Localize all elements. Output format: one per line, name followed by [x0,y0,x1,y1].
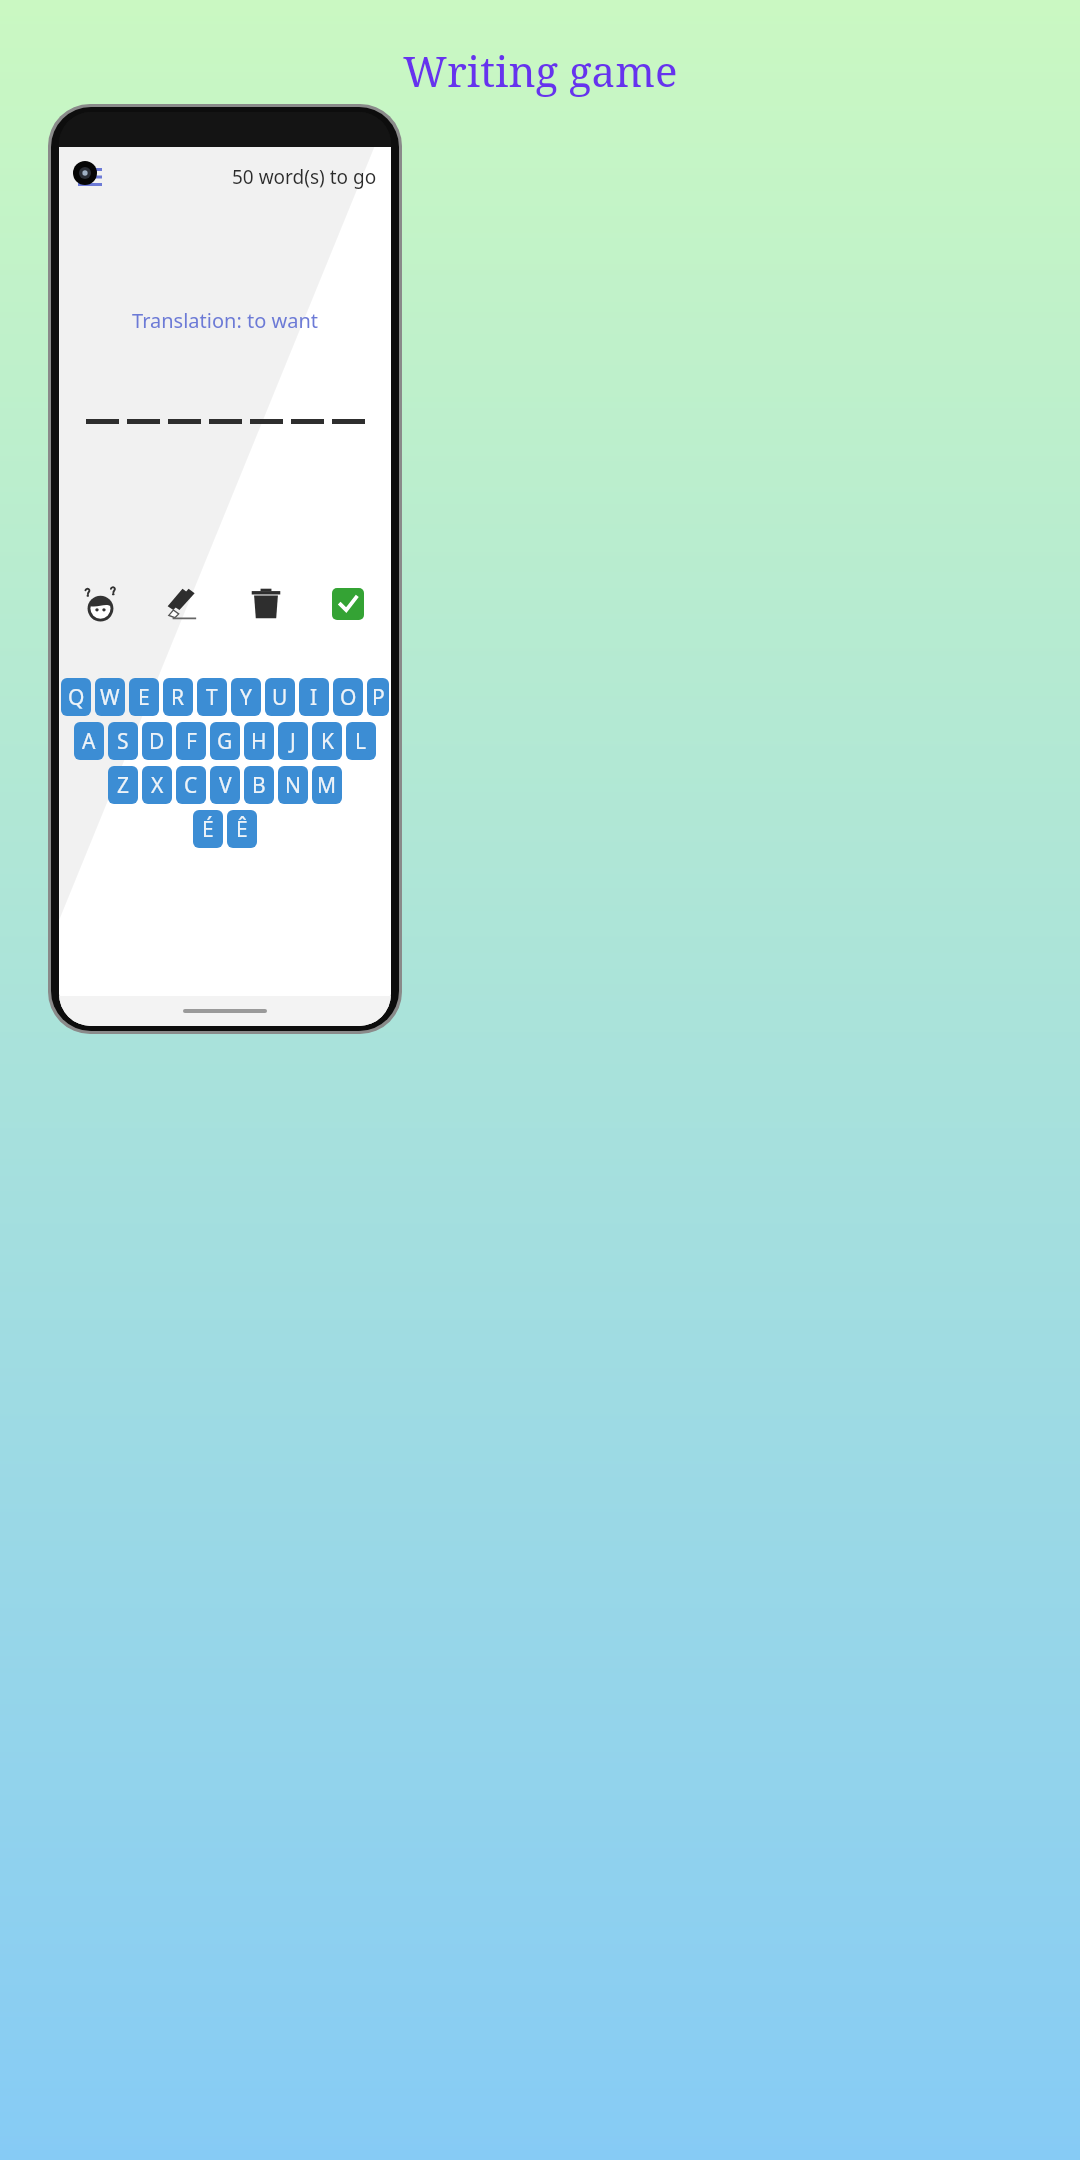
staticText: Q [68,683,85,712]
staticText: N [285,771,301,800]
button[interactable]: T [197,678,227,716]
button[interactable]: S [108,722,138,760]
staticText: C [184,771,198,800]
staticText: O [340,683,357,712]
button[interactable]: Ê [227,810,257,848]
button[interactable]: Confirm [323,579,373,629]
button[interactable]: J [278,722,308,760]
staticText: Ê [236,815,248,844]
staticText: Y [240,683,252,712]
button[interactable]: E [129,678,159,716]
staticText: D [149,727,165,756]
button[interactable]: K [312,722,342,760]
button[interactable]: R [163,678,193,716]
staticText: Translation: to want [132,307,318,334]
staticText: F [186,727,197,756]
button[interactable]: N [278,766,308,804]
button[interactable]: B [244,766,274,804]
button[interactable]: Erase [159,579,209,629]
staticText: E [138,683,150,712]
button[interactable]: Delete [241,579,291,629]
button[interactable]: X [142,766,172,804]
button[interactable]: C [176,766,206,804]
button[interactable]: F [176,722,206,760]
staticText: Z [117,771,130,800]
button[interactable]: O [333,678,363,716]
staticText: J [290,727,296,756]
staticText: A [82,727,96,756]
staticText: K [321,727,334,756]
staticText: B [252,771,266,800]
button[interactable]: D [142,722,172,760]
staticText: W [100,683,120,712]
staticText: H [251,727,267,756]
staticText: S [117,727,129,756]
button[interactable]: M [312,766,342,804]
staticText: É [202,815,214,844]
staticText: L [355,727,367,756]
staticText: G [217,727,233,756]
button[interactable]: Z [108,766,138,804]
staticText: Writing game [403,42,678,99]
button[interactable]: V [210,766,240,804]
button[interactable]: A [74,722,104,760]
button[interactable]: H [244,722,274,760]
button[interactable]: I [299,678,329,716]
staticText: U [272,683,288,712]
button[interactable]: U [265,678,295,716]
staticText: X [151,771,164,800]
button[interactable]: Hint [77,579,127,629]
staticText: R [171,683,185,712]
staticText: V [219,771,232,800]
button[interactable]: É [193,810,223,848]
button[interactable]: Menu [73,160,107,194]
staticText: M [317,771,337,800]
staticText: T [206,683,218,712]
staticText: 50 word(s) to go [232,164,377,190]
button[interactable]: W [95,678,125,716]
staticText: I [310,683,318,712]
button[interactable]: Q [61,678,91,716]
button[interactable]: Y [231,678,261,716]
button[interactable]: G [210,722,240,760]
button[interactable]: L [346,722,376,760]
button[interactable]: P [367,678,389,716]
staticText: P [372,683,385,712]
